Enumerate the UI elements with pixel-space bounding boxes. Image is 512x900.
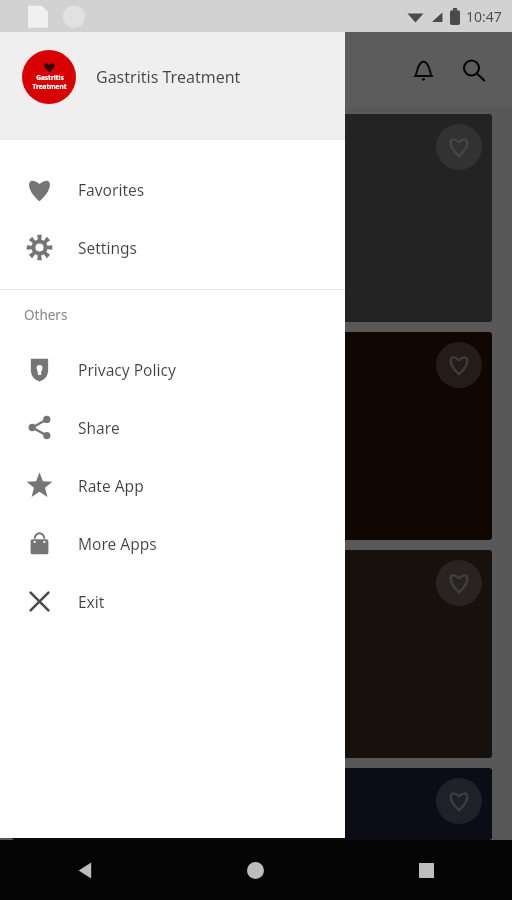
button[interactable]: Gastritis — [12, 768, 492, 840]
staticText: Gastritis — [24, 425, 97, 448]
button[interactable]: Recent apps — [341, 840, 512, 900]
staticText: Settings — [78, 237, 137, 258]
button[interactable]: Favorites — [0, 160, 345, 218]
button[interactable]: Search — [450, 47, 496, 93]
button[interactable]: Add to favourites — [436, 778, 482, 824]
button[interactable]: Add to favourites — [436, 342, 482, 388]
button[interactable]: Share — [0, 398, 345, 456]
button[interactable]: Add to favourites — [12, 114, 492, 322]
button[interactable]: Settings — [0, 218, 345, 276]
staticText: 10:47 — [466, 7, 502, 26]
staticText: Gastritis Treatment — [96, 66, 241, 88]
staticText: Rate App — [78, 475, 144, 496]
button[interactable]: Home — [170, 840, 341, 900]
button[interactable]: Gastritis — [0, 32, 345, 140]
button[interactable]: Add to favourites — [436, 560, 482, 606]
button[interactable]: Rate App — [0, 456, 345, 514]
staticText: Treatment — [32, 82, 67, 91]
button[interactable]: Back — [0, 840, 170, 900]
staticText: Favorites — [78, 179, 145, 200]
button[interactable]: Exit — [0, 572, 345, 630]
button[interactable]: Notifications — [400, 47, 446, 93]
staticText: Privacy Policy — [78, 359, 176, 380]
staticText: More Apps — [78, 533, 157, 554]
staticText: Share — [78, 417, 120, 438]
button[interactable]: Add to favourites — [436, 124, 482, 170]
staticText: Exit — [78, 591, 105, 612]
button[interactable]: Gastritis — [12, 550, 492, 758]
button[interactable]: More Apps — [0, 514, 345, 572]
staticText: Others — [24, 306, 68, 324]
button[interactable]: Privacy Policy — [0, 340, 345, 398]
staticText: Gastritis — [36, 73, 64, 82]
button[interactable]: Gastritis — [12, 332, 492, 540]
